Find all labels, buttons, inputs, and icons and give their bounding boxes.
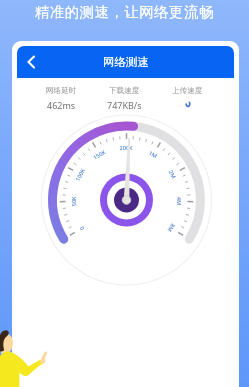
staticText: 下载速度	[109, 86, 140, 96]
staticText: 网络延时	[46, 86, 77, 96]
staticText: 精准的测速，让网络更流畅	[35, 3, 214, 21]
staticText: 462ms	[47, 99, 76, 111]
button[interactable]: Back	[17, 48, 45, 76]
staticText: 上传速度	[172, 86, 203, 96]
staticText: 网络测速	[103, 55, 149, 69]
staticText: 747KB/s	[107, 99, 142, 111]
